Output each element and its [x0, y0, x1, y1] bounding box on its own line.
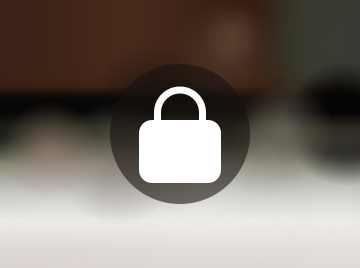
button[interactable]: Content locked — [110, 64, 250, 204]
